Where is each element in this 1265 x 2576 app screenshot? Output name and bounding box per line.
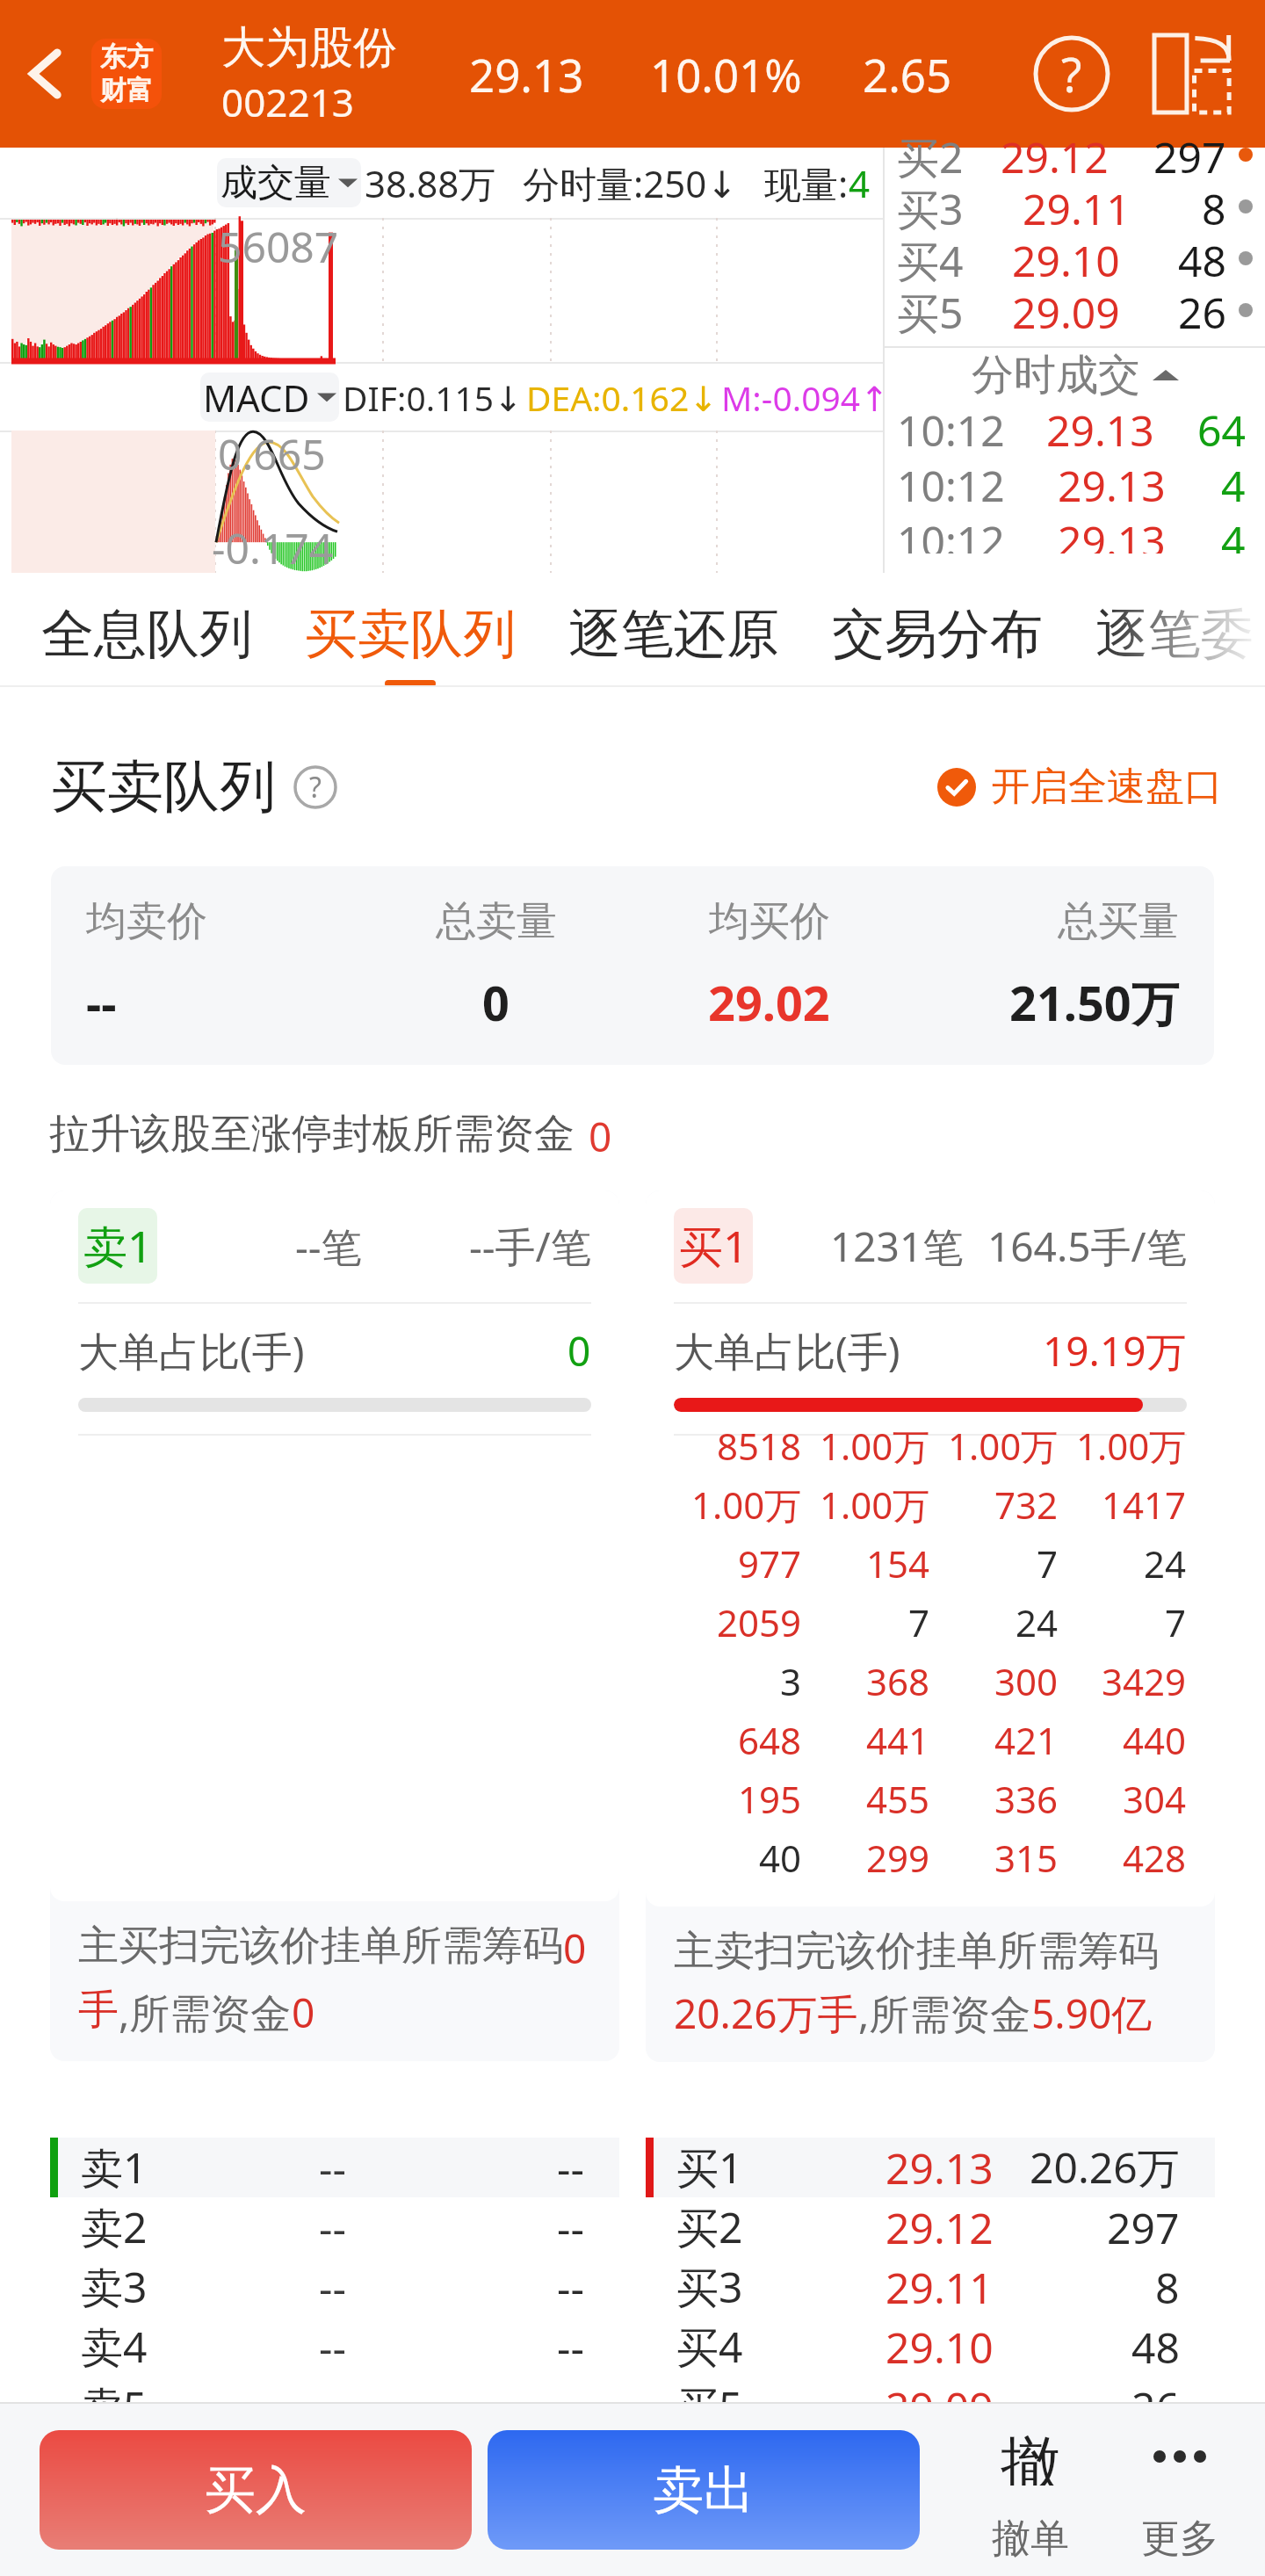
staticText: 164.5手/笔 (987, 1219, 1187, 1274)
staticText: 撤单 (992, 2514, 1069, 2563)
staticText: MACD (203, 373, 310, 422)
staticText: -- (557, 2199, 584, 2256)
staticText: 财富 (100, 74, 153, 107)
button[interactable]: 交易分布 (832, 573, 1043, 687)
staticText: 3429 (1102, 1656, 1187, 1706)
button[interactable]: 买2 (897, 128, 1253, 180)
staticText: 分时成交 (972, 349, 1140, 402)
staticText: 卖4 (81, 2318, 148, 2376)
staticText: 拉升该股至涨停封板所需资金 (49, 1109, 575, 1160)
button[interactable]: 买1 (646, 2138, 1215, 2197)
staticText: 卖出 (653, 2458, 755, 2522)
staticText: 1417 (1102, 1480, 1187, 1530)
button[interactable]: 买4 (897, 232, 1253, 284)
staticText: 38.88万 (365, 158, 496, 208)
staticText: 主卖扫完该价挂单所需筹码 (674, 1926, 1159, 1977)
button[interactable]: 卖5 (50, 2377, 619, 2436)
staticText: DIF:0.115↓ (343, 374, 523, 421)
staticText: 1.00万 (691, 1480, 802, 1530)
staticText: 421 (994, 1715, 1059, 1765)
staticText: 0 (292, 1985, 315, 2040)
staticText: 29.10 (1012, 232, 1120, 284)
staticText: 开启全速盘口 (991, 763, 1223, 811)
staticText: 1.00万 (1076, 1421, 1187, 1471)
staticText: 1.00万 (948, 1421, 1059, 1471)
staticText: 主买扫完该价挂单所需筹码 (78, 1921, 563, 1972)
button[interactable]: 逐笔委托 (1095, 573, 1265, 687)
staticText: 56087 (218, 218, 339, 275)
staticText: 29.11 (1023, 180, 1131, 232)
staticText: 买4 (676, 2318, 743, 2376)
staticText: 大单占比(手) (674, 1323, 900, 1378)
staticText: 8 (1155, 2259, 1180, 2316)
staticText: ,所需资金 (858, 1986, 1031, 2041)
staticText: 440 (1123, 1715, 1187, 1765)
button[interactable]: Back (0, 0, 91, 148)
staticText: 买3 (676, 2258, 743, 2316)
staticText: -- (319, 2259, 346, 2316)
staticText: 297 (1107, 2199, 1180, 2256)
button[interactable]: 10:12 (897, 512, 1246, 554)
button[interactable]: 成交量 (217, 158, 361, 207)
staticText: 3 (780, 1656, 802, 1706)
button[interactable]: 分时成交 (885, 348, 1265, 402)
staticText: 195 (738, 1774, 802, 1824)
staticText: 7 (1037, 1538, 1059, 1588)
button[interactable]: 卖1 (50, 2138, 619, 2197)
button[interactable]: 买5 (897, 284, 1253, 336)
button[interactable]: 买入 (40, 2430, 472, 2550)
staticText: 0 (567, 1323, 591, 1378)
staticText: 大为股份 (221, 20, 397, 76)
staticText: 26 (1178, 284, 1226, 336)
staticText: 东方 (100, 40, 153, 74)
button[interactable]: 10:12 (897, 457, 1246, 512)
button[interactable]: Help (293, 765, 337, 809)
staticText: 买1 (676, 2138, 743, 2196)
button[interactable]: 买4 (646, 2317, 1215, 2377)
button[interactable]: 撤单 (956, 2404, 1105, 2563)
button[interactable]: 更多 (1105, 2404, 1254, 2563)
button[interactable]: 买卖队列 (305, 573, 516, 687)
button[interactable]: 买2 (646, 2197, 1215, 2257)
button[interactable]: 全息队列 (41, 573, 252, 687)
staticText: 卖3 (81, 2258, 148, 2316)
staticText: 1.00万 (820, 1480, 930, 1530)
button[interactable]: Rotate screen (1130, 12, 1253, 135)
staticText: 648 (738, 1715, 802, 1765)
staticText: DEA:0.162↓ (526, 374, 718, 421)
staticText: ? (309, 768, 322, 807)
staticText: 48 (1131, 2319, 1180, 2376)
staticText: 撤 (1001, 2428, 1060, 2486)
staticText: 均买价 (709, 896, 830, 947)
staticText: M:-0.094↑ (721, 374, 883, 421)
staticText: 买2 (897, 128, 964, 180)
staticText: ,所需资金 (119, 1985, 292, 2040)
staticText: 1231笔 (830, 1219, 964, 1274)
staticText: 卖5 (81, 2377, 148, 2435)
staticText: 154 (866, 1538, 930, 1588)
button[interactable]: 买3 (646, 2257, 1215, 2317)
staticText: 买卖队列 (305, 601, 516, 668)
staticText: 299 (866, 1833, 930, 1883)
button[interactable]: 买3 (897, 180, 1253, 232)
staticText: 买2 (676, 2198, 743, 2256)
button[interactable]: 卖4 (50, 2317, 619, 2377)
staticText: -- (557, 2139, 584, 2196)
staticText: 20.26万手 (674, 1986, 858, 2041)
staticText: 29.13 (885, 2139, 994, 2196)
button[interactable]: 开启全速盘口 (937, 763, 1223, 811)
button[interactable]: Help (1014, 16, 1130, 132)
button[interactable]: East Money logo (91, 39, 162, 109)
staticText: ? (1061, 41, 1082, 106)
button[interactable]: 卖2 (50, 2197, 619, 2257)
staticText: 8518 (717, 1421, 802, 1471)
button[interactable]: 10:12 (897, 402, 1246, 457)
staticText: 29.13 (1058, 512, 1166, 554)
button[interactable]: 买5 (646, 2377, 1215, 2436)
staticText: 29.12 (1001, 128, 1109, 180)
button[interactable]: 卖3 (50, 2257, 619, 2317)
button[interactable]: 卖出 (488, 2430, 920, 2550)
staticText: -0.174 (212, 519, 334, 576)
button[interactable]: MACD (200, 373, 339, 422)
button[interactable]: 逐笔还原 (568, 573, 779, 687)
